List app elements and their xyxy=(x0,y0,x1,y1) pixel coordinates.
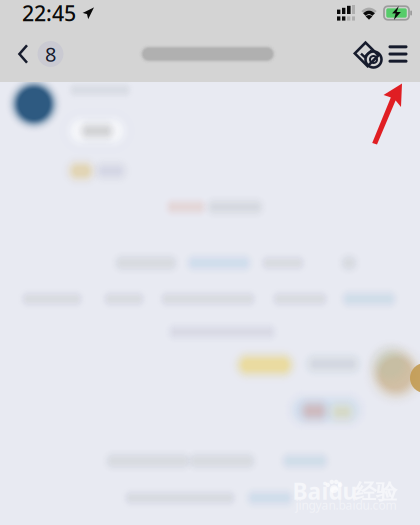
button[interactable]: 8 unread messages xyxy=(35,26,65,82)
staticText: 经验 xyxy=(355,479,397,505)
button[interactable]: Menu xyxy=(384,26,412,82)
button[interactable]: Card xyxy=(350,26,384,82)
staticText: 22:45 xyxy=(22,0,76,27)
button[interactable]: Back xyxy=(11,26,35,82)
staticText: jingyan.baidu.com xyxy=(295,497,396,513)
staticText: Baidu xyxy=(292,476,357,506)
staticText: 8 xyxy=(45,41,56,67)
